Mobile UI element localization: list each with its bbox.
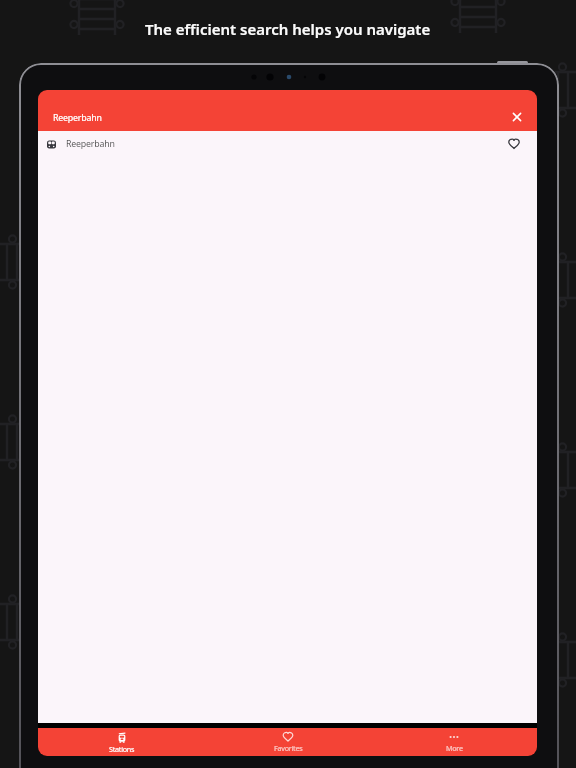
staticText: The efficient search helps you navigate	[145, 19, 431, 39]
staticText: Reeperbahn	[66, 138, 115, 150]
staticText: Stations	[109, 744, 135, 754]
staticText: Favorites	[274, 743, 303, 753]
button[interactable]: Reeperbahn	[38, 131, 537, 157]
button[interactable]: Stations	[38, 728, 205, 756]
button[interactable]: Favorites	[205, 728, 371, 756]
staticText: More	[446, 743, 463, 753]
button[interactable]	[510, 110, 524, 124]
staticText: Reeperbahn	[53, 112, 102, 124]
button[interactable]	[507, 137, 521, 151]
button[interactable]: More	[371, 728, 537, 756]
